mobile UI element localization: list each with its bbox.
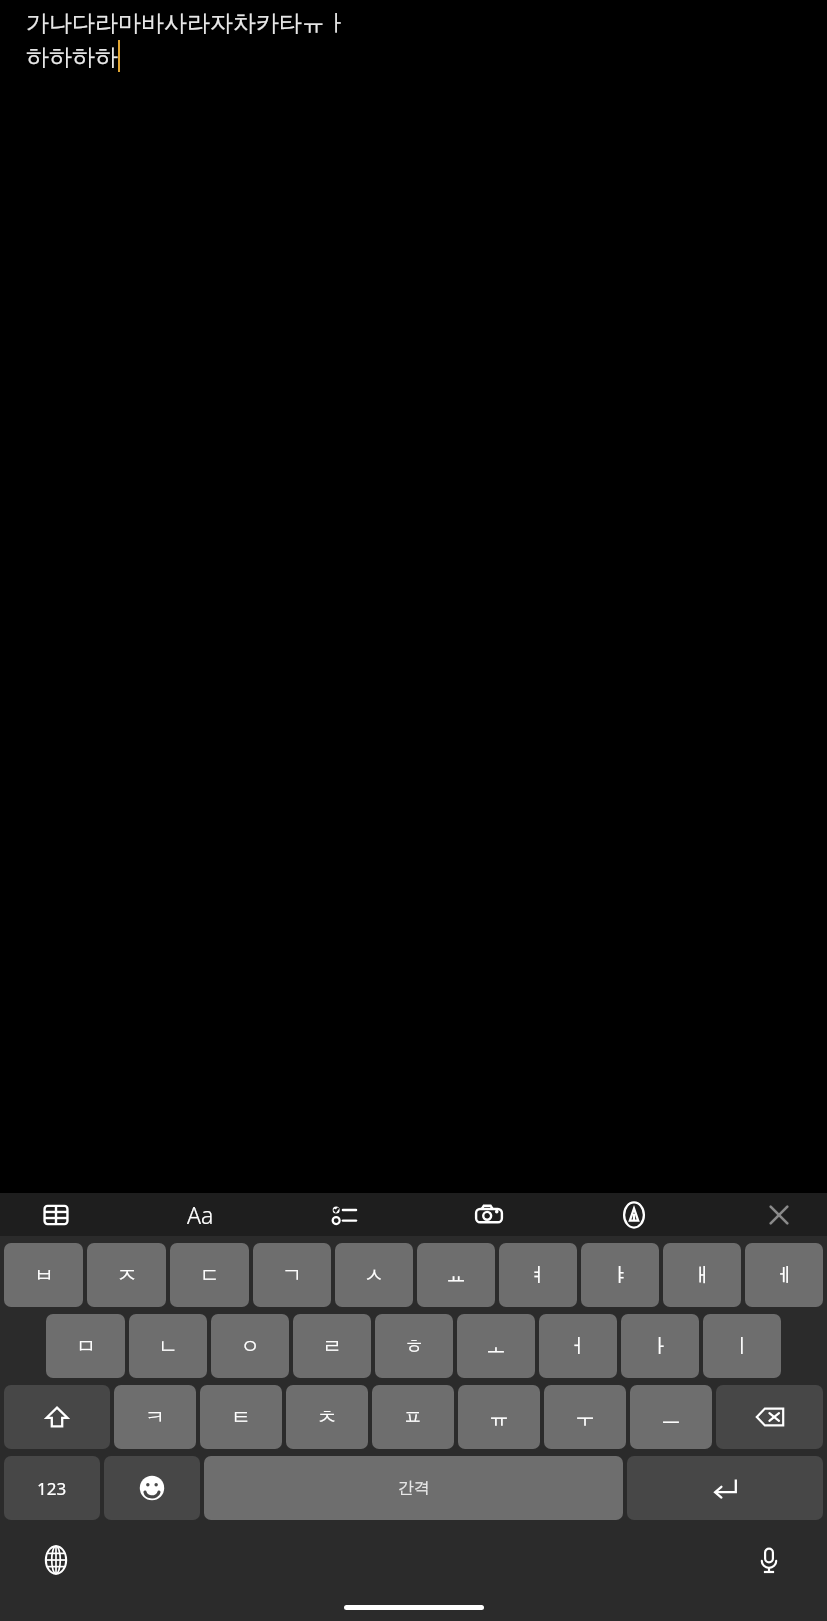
staticText: ㅈ <box>117 1263 137 1288</box>
button[interactable]: ㅋ <box>114 1385 196 1449</box>
button[interactable]: ㄹ <box>293 1314 371 1378</box>
staticText: 간격 <box>398 1478 430 1498</box>
button[interactable]: ㅗ <box>457 1314 535 1378</box>
button[interactable]: ㅐ <box>663 1243 741 1307</box>
button[interactable]: Voice input <box>741 1532 797 1588</box>
staticText: ㅍ <box>403 1405 423 1430</box>
button[interactable]: Close <box>757 1193 801 1236</box>
staticText: ㅗ <box>486 1334 506 1359</box>
button[interactable]: ㅛ <box>417 1243 495 1307</box>
staticText: ㅓ <box>568 1334 588 1359</box>
staticText: ㅌ <box>231 1405 251 1430</box>
staticText: ㅂ <box>34 1263 54 1288</box>
button[interactable]: ㅁ <box>46 1314 125 1378</box>
button[interactable]: Text format <box>178 1193 222 1236</box>
button[interactable]: ㅡ <box>630 1385 712 1449</box>
staticText: ㅎ <box>404 1334 424 1359</box>
button[interactable]: ㅣ <box>703 1314 781 1378</box>
staticText: ㅕ <box>528 1263 548 1288</box>
button[interactable]: Draw <box>612 1193 656 1236</box>
staticText: ㅣ <box>732 1334 752 1359</box>
button[interactable]: Table <box>34 1193 78 1236</box>
staticText: 하하하하 <box>26 43 118 72</box>
staticText: ㅐ <box>692 1263 712 1288</box>
staticText: ㅔ <box>774 1263 794 1288</box>
button[interactable]: ㅌ <box>200 1385 282 1449</box>
staticText: 123 <box>37 1477 67 1500</box>
button[interactable]: Camera <box>467 1193 511 1236</box>
button[interactable]: 간격 <box>204 1456 623 1520</box>
button[interactable]: ㅍ <box>372 1385 454 1449</box>
button[interactable]: 123 <box>4 1456 100 1520</box>
staticText: ㅑ <box>610 1263 630 1288</box>
staticText: ㅛ <box>446 1263 466 1288</box>
staticText: Aa <box>187 1199 214 1230</box>
button[interactable]: Enter <box>627 1456 823 1520</box>
staticText: ㅁ <box>76 1334 96 1359</box>
button[interactable]: ㄱ <box>253 1243 331 1307</box>
staticText: ㅋ <box>145 1405 165 1430</box>
button[interactable]: ㅑ <box>581 1243 659 1307</box>
button[interactable]: ㅓ <box>539 1314 617 1378</box>
button[interactable]: Change language <box>28 1532 84 1588</box>
button[interactable]: ㅊ <box>286 1385 368 1449</box>
staticText: ㅇ <box>240 1334 260 1359</box>
button[interactable]: Emoji <box>104 1456 200 1520</box>
staticText: ㅜ <box>575 1405 595 1430</box>
button[interactable]: ㄴ <box>129 1314 207 1378</box>
button[interactable]: ㅕ <box>499 1243 577 1307</box>
button[interactable]: ㅂ <box>4 1243 83 1307</box>
button[interactable]: ㅏ <box>621 1314 699 1378</box>
button[interactable]: ㅎ <box>375 1314 453 1378</box>
button[interactable]: Backspace <box>716 1385 823 1449</box>
button[interactable]: ㅜ <box>544 1385 626 1449</box>
button[interactable]: ㅠ <box>458 1385 540 1449</box>
staticText: 가나다라마바사라자차카타ㅠㅏ <box>26 9 348 38</box>
button[interactable]: ㅅ <box>335 1243 413 1307</box>
staticText: ㄹ <box>322 1334 342 1359</box>
button[interactable]: Checklist <box>322 1193 366 1236</box>
button[interactable]: Shift <box>4 1385 110 1449</box>
staticText: ㄱ <box>282 1263 302 1288</box>
staticText: ㄴ <box>158 1334 178 1359</box>
staticText: ㄷ <box>200 1263 220 1288</box>
staticText: ㅠ <box>489 1405 509 1430</box>
staticText: ㅏ <box>650 1334 670 1359</box>
button[interactable]: ㄷ <box>170 1243 249 1307</box>
button[interactable]: ㅈ <box>87 1243 166 1307</box>
staticText: ㅊ <box>317 1405 337 1430</box>
staticText: ㅅ <box>364 1263 384 1288</box>
staticText: ㅡ <box>661 1405 681 1430</box>
button[interactable]: ㅔ <box>745 1243 823 1307</box>
button[interactable]: ㅇ <box>211 1314 289 1378</box>
